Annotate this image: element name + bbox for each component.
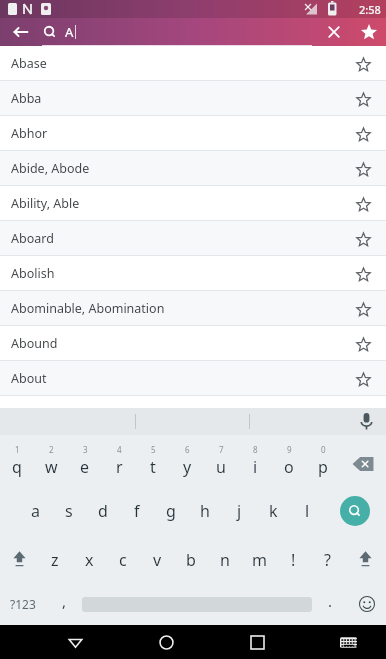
button[interactable]: Abolish [0, 256, 386, 291]
staticText: f [134, 500, 140, 522]
staticText: 2 [49, 444, 54, 455]
staticText: a [31, 500, 40, 522]
button[interactable]: Add Abhor to favorites [348, 119, 378, 149]
staticText: m [252, 549, 267, 571]
button[interactable]: Abominable, Abomination [0, 291, 386, 326]
button[interactable]: 3 [68, 435, 102, 486]
staticText: j [237, 500, 242, 522]
button[interactable]: z [38, 536, 72, 583]
button[interactable]: Add Abide, Abode to favorites [348, 154, 378, 184]
staticText: y [183, 456, 192, 478]
staticText: 6 [185, 444, 190, 455]
button[interactable]: 2 [34, 435, 68, 486]
staticText: 3 [83, 444, 88, 455]
staticText: Ability, Able [11, 195, 348, 212]
button[interactable]: Back [0, 18, 42, 46]
button[interactable]: f [120, 486, 154, 536]
button[interactable]: m [242, 536, 276, 583]
button[interactable]: 8 [238, 435, 272, 486]
staticText: Abolish [11, 265, 348, 282]
button[interactable]: Add About to favorites [348, 364, 378, 394]
button[interactable]: , [46, 583, 82, 625]
staticText: n [220, 549, 230, 571]
button[interactable]: s [52, 486, 86, 536]
button[interactable]: Add Ability, Able to favorites [348, 189, 378, 219]
button[interactable]: About [0, 361, 386, 396]
button[interactable]: Emoji [348, 583, 386, 625]
staticText: ? [324, 549, 331, 571]
staticText: 9 [287, 444, 292, 455]
staticText: i [253, 456, 258, 478]
button[interactable]: Add Abolish to favorites [348, 259, 378, 289]
button[interactable]: Abase [0, 46, 386, 81]
button[interactable]: 5 [136, 435, 170, 486]
button[interactable]: Shift [344, 536, 386, 583]
staticText: z [51, 549, 59, 571]
button[interactable]: Add Abound to favorites [348, 329, 378, 359]
button[interactable]: Add Abominable, Abomination to favorites [348, 294, 378, 324]
button[interactable]: Aboard [0, 221, 386, 256]
button[interactable]: c [106, 536, 140, 583]
staticText: Abide, Abode [11, 160, 348, 177]
staticText: k [269, 500, 278, 522]
button[interactable]: ? [310, 536, 344, 583]
button[interactable]: 6 [170, 435, 204, 486]
button[interactable]: Switch keyboard [328, 625, 368, 659]
button[interactable]: Clear search [316, 18, 352, 46]
button[interactable]: . [312, 583, 348, 625]
button[interactable]: ! [276, 536, 310, 583]
button[interactable]: Voice input [346, 408, 386, 435]
staticText: Abominable, Abomination [11, 300, 348, 317]
staticText: 7 [219, 444, 224, 455]
button[interactable]: Ability, Able [0, 186, 386, 221]
button[interactable]: Abide, Abode [0, 151, 386, 186]
button[interactable]: Abba [0, 81, 386, 116]
button[interactable]: k [256, 486, 290, 536]
button[interactable]: Favorites [352, 18, 386, 46]
button[interactable]: g [154, 486, 188, 536]
button[interactable]: Abound [0, 326, 386, 361]
button[interactable]: Home [146, 625, 186, 659]
staticText: l [305, 500, 310, 522]
button[interactable]: h [188, 486, 222, 536]
button[interactable]: Backspace [340, 435, 386, 486]
staticText: v [153, 549, 162, 571]
staticText: A [65, 23, 74, 41]
button[interactable]: d [86, 486, 120, 536]
button[interactable]: Add Aboard to favorites [348, 224, 378, 254]
button[interactable]: Shift [0, 536, 38, 583]
staticText: h [200, 500, 210, 522]
button[interactable]: Space [82, 583, 312, 625]
button[interactable]: 9 [272, 435, 306, 486]
button[interactable]: x [72, 536, 106, 583]
staticText: e [80, 456, 90, 478]
button[interactable]: Recent apps [237, 625, 277, 659]
button[interactable]: n [208, 536, 242, 583]
staticText: About [11, 370, 348, 387]
button[interactable]: Back [55, 625, 95, 659]
button[interactable]: Search [324, 486, 386, 536]
staticText: 0 [321, 444, 326, 455]
button[interactable]: b [174, 536, 208, 583]
button[interactable]: v [140, 536, 174, 583]
button[interactable]: ?123 [0, 583, 46, 625]
button[interactable]: 4 [102, 435, 136, 486]
staticText: c [119, 549, 127, 571]
button[interactable]: 1 [0, 435, 34, 486]
button[interactable]: a [18, 486, 52, 536]
button[interactable]: j [222, 486, 256, 536]
button[interactable]: Abhor [0, 116, 386, 151]
button[interactable]: 0 [306, 435, 340, 486]
staticText: Abba [11, 90, 348, 107]
button[interactable]: Add Abase to favorites [348, 49, 378, 79]
staticText: o [284, 456, 294, 478]
staticText: s [65, 500, 73, 522]
staticText: 2:58 [359, 2, 381, 17]
staticText: q [12, 456, 22, 478]
button[interactable]: l [290, 486, 324, 536]
staticText: 8 [253, 444, 258, 455]
staticText: Abound [11, 335, 348, 352]
button[interactable]: Add Abba to favorites [348, 84, 378, 114]
staticText: 5 [151, 444, 156, 455]
button[interactable]: 7 [204, 435, 238, 486]
